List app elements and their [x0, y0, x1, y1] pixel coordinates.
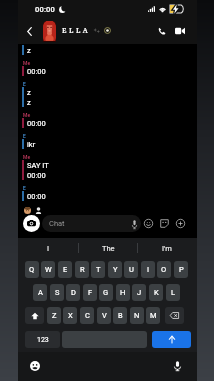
- staticText: E: [23, 185, 26, 191]
- button[interactable]: Me: [22, 153, 201, 184]
- staticText: H: [120, 288, 126, 297]
- staticText: D: [71, 288, 76, 297]
- button[interactable]: E: [22, 132, 201, 153]
- staticText: U: [129, 265, 134, 274]
- button[interactable]: R: [75, 261, 89, 278]
- button[interactable]: Q: [25, 261, 39, 278]
- staticText: Z: [52, 311, 57, 320]
- staticText: I: [47, 244, 50, 253]
- button[interactable]: Chat: [42, 215, 141, 232]
- staticText: P: [179, 265, 184, 274]
- button[interactable]: T: [91, 261, 105, 278]
- staticText: The: [102, 244, 115, 253]
- button[interactable]: B: [113, 307, 127, 324]
- button[interactable]: z: [22, 45, 201, 59]
- button[interactable]: Camera: [23, 215, 40, 232]
- staticText: Chat: [49, 219, 65, 228]
- button[interactable]: G: [99, 284, 113, 301]
- staticText: K: [154, 288, 159, 297]
- staticText: 00:00: [35, 5, 56, 14]
- staticText: F: [88, 288, 93, 297]
- button[interactable]: P: [174, 261, 188, 278]
- staticText: Me: [23, 60, 31, 66]
- staticText: N: [134, 311, 140, 320]
- staticText: 00:00: [27, 67, 46, 76]
- staticText: X: [68, 311, 73, 320]
- button[interactable]: Send: [152, 331, 191, 348]
- button[interactable]: Emoji: [142, 217, 154, 229]
- staticText: G: [103, 288, 109, 297]
- button[interactable]: I: [18, 238, 78, 258]
- staticText: J: [137, 288, 142, 297]
- button[interactable]: E: [22, 184, 201, 205]
- staticText: 00:00: [27, 171, 46, 180]
- button[interactable]: M: [146, 307, 160, 324]
- staticText: W: [45, 265, 52, 274]
- staticText: E: [23, 81, 26, 87]
- button[interactable]: Y: [108, 261, 122, 278]
- staticText: C: [85, 311, 90, 320]
- button[interactable]: V: [97, 307, 111, 324]
- staticText: R: [80, 265, 85, 274]
- button[interactable]: J: [132, 284, 146, 301]
- staticText: 00:00: [27, 192, 46, 201]
- button[interactable]: L: [166, 284, 180, 301]
- staticText: E: [63, 265, 68, 274]
- button[interactable]: Shift: [25, 307, 44, 324]
- button[interactable]: Video call: [171, 18, 189, 44]
- button[interactable]: K: [149, 284, 163, 301]
- button[interactable]: U: [124, 261, 138, 278]
- staticText: ikr: [27, 140, 36, 149]
- button[interactable]: 123: [25, 331, 60, 348]
- staticText: 123: [37, 336, 49, 344]
- button[interactable]: Z: [47, 307, 61, 324]
- staticText: Q: [29, 265, 35, 274]
- staticText: M: [150, 311, 157, 320]
- staticText: I: [147, 265, 150, 274]
- button[interactable]: C: [80, 307, 94, 324]
- button[interactable]: Back: [21, 18, 37, 44]
- staticText: z: [27, 98, 31, 107]
- button[interactable]: The: [78, 238, 138, 258]
- button[interactable]: S: [50, 284, 64, 301]
- staticText: E: [23, 133, 26, 139]
- button[interactable]: F: [83, 284, 97, 301]
- staticText: B: [118, 311, 123, 320]
- button[interactable]: Voice typing: [169, 358, 185, 374]
- button[interactable]: O: [157, 261, 171, 278]
- button[interactable]: D: [66, 284, 80, 301]
- button[interactable]: Me: [22, 59, 201, 80]
- button[interactable]: Emoji keyboard: [27, 358, 43, 374]
- staticText: ELLA: [62, 27, 91, 35]
- button[interactable]: Stickers: [158, 217, 170, 229]
- button[interactable]: E: [22, 80, 201, 111]
- button[interactable]: W: [41, 261, 55, 278]
- staticText: z: [27, 88, 31, 97]
- staticText: z: [27, 46, 31, 55]
- staticText: Y: [113, 265, 118, 274]
- button[interactable]: H: [116, 284, 130, 301]
- button[interactable]: Me: [22, 111, 201, 132]
- button[interactable]: A: [33, 284, 47, 301]
- staticText: I'm: [162, 244, 172, 253]
- staticText: V: [102, 311, 107, 320]
- staticText: O: [161, 265, 167, 274]
- button[interactable]: Profile photo: [43, 21, 56, 42]
- button[interactable]: X: [63, 307, 77, 324]
- button[interactable]: Voice message: [127, 216, 141, 232]
- button[interactable]: I'm: [137, 238, 197, 258]
- staticText: Me: [23, 112, 31, 118]
- button[interactable]: Backspace: [165, 307, 184, 324]
- button[interactable]: E: [58, 261, 72, 278]
- button[interactable]: I: [141, 261, 155, 278]
- staticText: A: [38, 288, 43, 297]
- staticText: Me: [23, 154, 31, 160]
- staticText: SAY IT: [27, 161, 49, 170]
- button[interactable]: Add attachment: [174, 217, 186, 229]
- staticText: S: [55, 288, 60, 297]
- button[interactable]: Voice call: [154, 18, 170, 44]
- button[interactable]: N: [130, 307, 144, 324]
- staticText: 00:00: [27, 119, 46, 128]
- staticText: T: [96, 265, 101, 274]
